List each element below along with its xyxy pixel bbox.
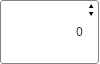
- button[interactable]: Number value 0: [0, 0, 99, 64]
- button[interactable]: Increase value: [85, 0, 96, 9]
- staticText: 0: [76, 23, 83, 39]
- button[interactable]: Decrease value: [85, 9, 96, 19]
